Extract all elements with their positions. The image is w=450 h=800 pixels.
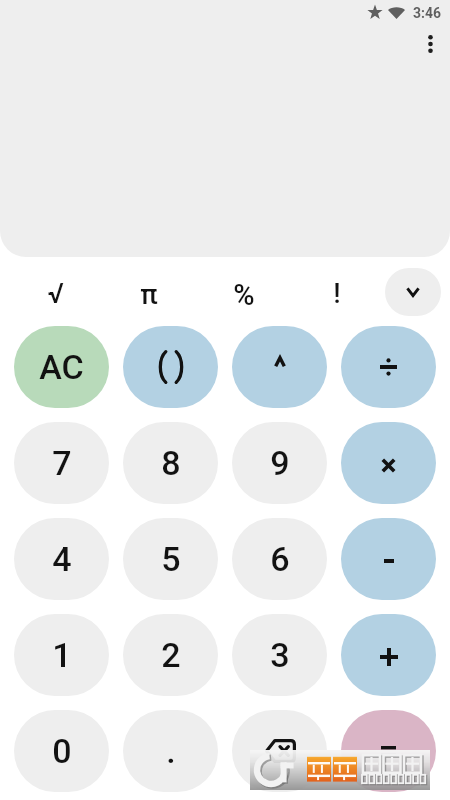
staticText: AC [39,347,84,387]
other: Parentheses [158,350,184,384]
button[interactable]: 1 [14,614,109,696]
staticText: π [140,278,158,311]
other: Equals [381,746,396,757]
other: Backspace [264,739,296,763]
button[interactable]: 8 [123,422,218,504]
staticText: . [166,731,176,771]
staticText: 1 [52,635,72,675]
button[interactable]: ! [311,269,363,317]
button[interactable]: 9 [232,422,327,504]
button[interactable]: 2 [123,614,218,696]
button[interactable]: Divide [341,326,436,408]
button[interactable]: π [123,270,175,318]
staticText: 5 [161,539,181,579]
staticText: 0 [52,731,72,771]
other: Power [274,356,286,368]
staticText: 3 [270,635,290,675]
staticText: ! [333,277,341,310]
staticText: 8 [161,443,181,483]
button[interactable]: . [123,710,218,792]
other: Multiply [381,458,396,473]
button[interactable]: 6 [232,518,327,600]
button[interactable]: 3 [232,614,327,696]
button[interactable]: Parentheses [123,326,218,408]
button[interactable]: AC [14,326,109,408]
staticText: 6 [270,539,290,579]
button[interactable]: 5 [123,518,218,600]
other: Divide [380,358,397,376]
button[interactable]: % [218,271,270,319]
staticText: 4 [52,539,72,579]
button[interactable]: 0 [14,710,109,792]
other: Plus [380,648,398,666]
button[interactable]: Plus [341,614,436,696]
staticText: 9 [270,443,290,483]
button[interactable]: 7 [14,422,109,504]
staticText: 3:46 [413,5,442,21]
button[interactable]: Backspace [232,710,327,792]
staticText: 2 [161,635,181,675]
button[interactable]: Power [232,326,327,408]
staticText: √ [47,277,64,310]
button[interactable]: Minus [341,518,436,600]
button[interactable]: √ [29,269,81,317]
button[interactable]: More options [412,26,448,62]
button[interactable]: Collapse keypad [385,268,441,316]
button[interactable]: Multiply [341,422,436,504]
button[interactable]: Equals [341,710,436,792]
button[interactable]: 4 [14,518,109,600]
staticText: 7 [52,443,72,483]
staticText: % [233,278,255,312]
